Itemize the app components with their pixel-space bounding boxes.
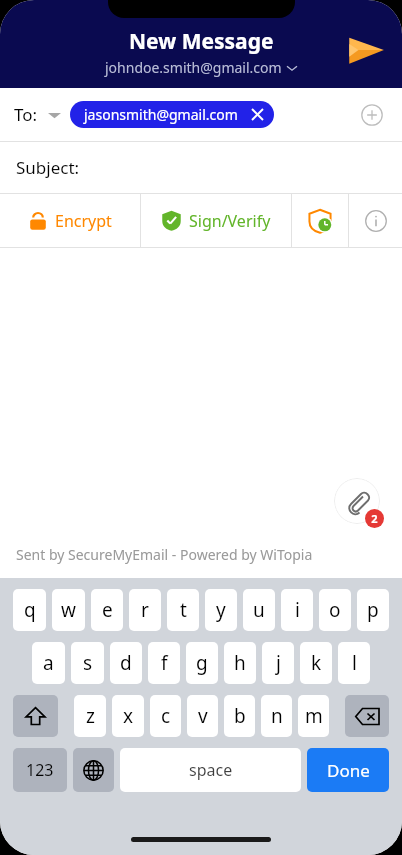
- staticText: g: [196, 650, 208, 676]
- button[interactable]: Done: [307, 748, 389, 792]
- button[interactable]: x: [112, 695, 144, 737]
- staticText: w: [61, 597, 76, 623]
- staticText: c: [161, 703, 171, 729]
- staticText: Encrypt: [55, 210, 112, 232]
- staticText: New Message: [129, 27, 274, 56]
- staticText: 123: [26, 759, 54, 781]
- button[interactable]: v: [187, 695, 218, 737]
- button[interactable]: Send: [340, 24, 392, 76]
- button[interactable]: l: [338, 642, 370, 684]
- staticText: p: [367, 597, 379, 623]
- button[interactable]: w: [52, 589, 85, 631]
- button[interactable]: 123: [13, 748, 67, 792]
- staticText: m: [305, 703, 323, 729]
- staticText: h: [234, 650, 246, 676]
- staticText: a: [43, 650, 54, 676]
- button[interactable]: Backspace: [345, 695, 389, 737]
- button[interactable]: b: [224, 695, 255, 737]
- staticText: To:: [14, 103, 38, 126]
- button[interactable]: m: [298, 695, 329, 737]
- button[interactable]: j: [262, 642, 294, 684]
- button[interactable]: o: [319, 589, 351, 631]
- button[interactable]: g: [186, 642, 218, 684]
- staticText: l: [352, 650, 357, 676]
- staticText: s: [83, 650, 93, 676]
- staticText: y: [216, 597, 226, 623]
- staticText: Done: [327, 759, 370, 782]
- staticText: n: [271, 703, 283, 729]
- button[interactable]: r: [129, 589, 161, 631]
- button[interactable]: space: [120, 748, 301, 792]
- staticText: Sent by SecureMyEmail - Powered by WiTop…: [16, 545, 313, 564]
- staticText: z: [86, 703, 95, 729]
- staticText: johndoe.smith@gmail.com: [105, 58, 282, 77]
- button[interactable]: s: [71, 642, 104, 684]
- button[interactable]: Info: [349, 194, 402, 247]
- button[interactable]: Add recipient: [356, 99, 388, 131]
- button[interactable]: t: [167, 589, 199, 631]
- button[interactable]: jasonsmith@gmail.com: [70, 101, 274, 128]
- button[interactable]: d: [110, 642, 142, 684]
- button[interactable]: Recipient options: [44, 105, 64, 125]
- staticText: q: [24, 597, 36, 623]
- button[interactable]: z: [74, 695, 106, 737]
- button[interactable]: Subject:: [0, 142, 402, 193]
- staticText: j: [276, 650, 281, 676]
- button[interactable]: e: [91, 589, 123, 631]
- staticText: Sign/Verify: [189, 210, 271, 232]
- staticText: u: [253, 597, 265, 623]
- staticText: o: [329, 597, 341, 623]
- button[interactable]: h: [224, 642, 256, 684]
- staticText: b: [234, 703, 246, 729]
- button[interactable]: Shift: [13, 695, 58, 737]
- staticText: space: [189, 759, 233, 781]
- staticText: i: [295, 597, 300, 623]
- staticText: v: [198, 703, 208, 729]
- button[interactable]: Sign/Verify: [141, 194, 291, 247]
- button[interactable]: Encrypt: [0, 194, 140, 247]
- staticText: jasonsmith@gmail.com: [84, 105, 238, 124]
- staticText: k: [311, 650, 322, 676]
- staticText: e: [102, 597, 113, 623]
- button[interactable]: i: [281, 589, 313, 631]
- staticText: 2: [371, 511, 378, 526]
- button[interactable]: n: [261, 695, 292, 737]
- staticText: r: [141, 597, 149, 623]
- button[interactable]: k: [300, 642, 332, 684]
- button[interactable]: y: [205, 589, 237, 631]
- button[interactable]: q: [13, 589, 46, 631]
- staticText: d: [120, 650, 132, 676]
- button[interactable]: a: [32, 642, 65, 684]
- staticText: t: [180, 597, 187, 623]
- button[interactable]: Change language: [73, 748, 114, 792]
- button[interactable]: c: [150, 695, 181, 737]
- button[interactable]: f: [148, 642, 180, 684]
- staticText: Subject:: [16, 156, 80, 179]
- button[interactable]: u: [243, 589, 275, 631]
- staticText: x: [123, 703, 134, 729]
- staticText: f: [161, 650, 168, 676]
- button[interactable]: p: [357, 589, 389, 631]
- button[interactable]: Expiring message: [292, 194, 348, 247]
- button[interactable]: Attachments: [334, 478, 380, 524]
